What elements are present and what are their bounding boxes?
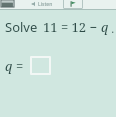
staticText: q [101, 18, 109, 36]
staticText: 11 = 12 − [43, 18, 101, 36]
staticText: = [16, 57, 24, 75]
staticText: q [5, 57, 13, 75]
button[interactable]: Flag [63, 0, 83, 9]
button[interactable]: Answer input [30, 56, 51, 75]
button[interactable]: Listen [31, 0, 62, 8]
button[interactable]: Menu [0, 0, 15, 8]
staticText: Solve [5, 18, 38, 36]
staticText: . [109, 22, 115, 36]
staticText: Listen [38, 1, 53, 8]
